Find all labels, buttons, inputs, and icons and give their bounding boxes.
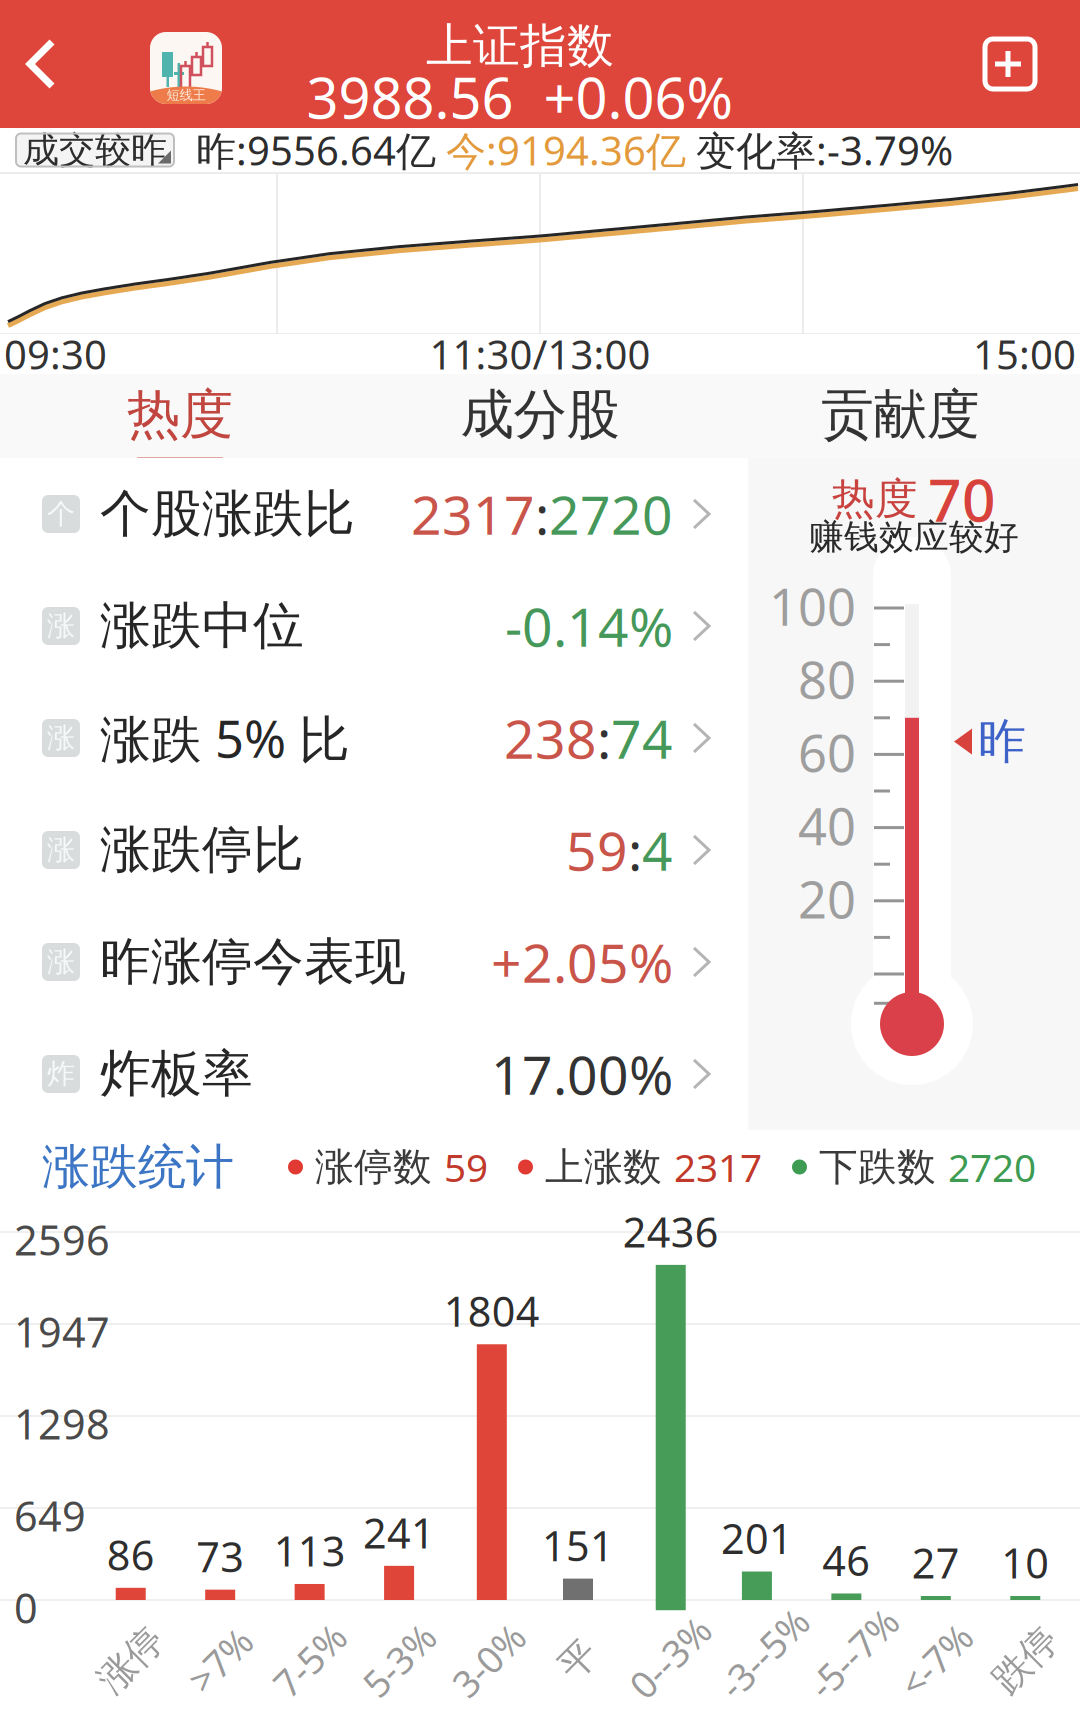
staticText: 上涨数 (545, 1143, 662, 1191)
staticText: 20 (798, 865, 856, 932)
staticText: : (628, 815, 642, 885)
staticText: 涨 (47, 609, 75, 643)
staticText: 涨跌 5% 比 (100, 704, 350, 772)
staticText: 涨 (47, 833, 75, 867)
staticText: 赚钱效应较好 (809, 516, 1019, 558)
staticText: 今:9194.36亿 (446, 123, 686, 176)
staticText: 241 (363, 1505, 435, 1560)
staticText: 17.00% (491, 1039, 673, 1109)
staticText: -5--7% (802, 1635, 911, 1685)
staticText: 1947 (14, 1304, 110, 1359)
staticText: 15:00 (973, 327, 1076, 380)
staticText: 变化率:-3.79% (696, 123, 953, 176)
staticText: 86 (107, 1527, 155, 1582)
staticText: 2436 (623, 1204, 719, 1259)
staticText: 59 (566, 815, 628, 885)
staticText: <-7% (893, 1635, 978, 1685)
staticText: 74 (611, 703, 673, 773)
staticText: 2596 (14, 1212, 110, 1267)
button[interactable]: 成交较昨 (16, 133, 174, 166)
button[interactable]: 炸 (0, 1018, 748, 1130)
staticText: 09:30 (4, 327, 107, 380)
staticText: 60 (798, 719, 856, 786)
staticText: 238 (504, 703, 597, 773)
button[interactable]: 涨 (0, 906, 748, 1018)
staticText: : (597, 703, 611, 773)
staticText: 下跌数 (819, 1143, 936, 1191)
staticText: 2317 (674, 1141, 762, 1193)
staticText: 个股涨跌比 (100, 483, 355, 545)
staticText: 7-5% (267, 1635, 352, 1685)
staticText: 2720 (549, 479, 673, 549)
staticText: 涨跌中位 (100, 595, 304, 657)
staticText: 昨:9556.64亿 (196, 123, 436, 176)
button[interactable]: Back (16, 0, 126, 128)
staticText: 5-3% (357, 1635, 442, 1685)
staticText: 80 (798, 646, 856, 713)
button[interactable]: 涨 (0, 682, 748, 794)
button[interactable]: 贡献度 (720, 374, 1080, 458)
staticText: 涨 (47, 945, 75, 979)
staticText: 贡献度 (820, 382, 979, 447)
button[interactable]: 涨 (0, 570, 748, 682)
button[interactable]: 个 (0, 458, 748, 570)
staticText: 上证指数 (426, 17, 614, 75)
staticText: 2720 (948, 1141, 1036, 1193)
staticText: 涨跌停比 (100, 819, 304, 881)
staticText: 46 (822, 1533, 870, 1587)
staticText: 1298 (14, 1396, 110, 1451)
staticText: 0 (14, 1580, 38, 1635)
staticText: 炸板率 (100, 1043, 253, 1105)
staticText: 个 (47, 497, 75, 531)
button[interactable]: 涨 (0, 794, 748, 906)
staticText: >7% (184, 1635, 257, 1685)
staticText: 涨停 (94, 1637, 168, 1683)
staticText: 热度 (127, 382, 233, 447)
staticText: 113 (274, 1523, 346, 1578)
staticText: 201 (721, 1511, 793, 1565)
staticText: 炸 (47, 1057, 75, 1091)
staticText: 4 (642, 815, 673, 885)
staticText: 100 (769, 572, 856, 640)
staticText: +2.05% (491, 927, 673, 997)
staticText: 成交较昨 (23, 128, 167, 172)
staticText: 0--3% (623, 1635, 720, 1685)
staticText: 3-0% (446, 1635, 531, 1685)
staticText: 40 (798, 792, 856, 859)
staticText: 涨 (47, 721, 75, 755)
staticText: 10 (1001, 1535, 1049, 1590)
staticText: 11:30/13:00 (429, 327, 650, 380)
staticText: 27 (912, 1535, 960, 1590)
staticText: -3--5% (712, 1635, 821, 1685)
staticText: 3988.56 +0.06% (306, 60, 733, 134)
staticText: 成分股 (460, 382, 619, 447)
staticText: 1804 (444, 1283, 540, 1338)
staticText: 昨涨停今表现 (100, 931, 406, 993)
staticText: : (535, 479, 549, 549)
staticText: 2317 (411, 479, 535, 549)
staticText: 涨跌统计 (42, 1137, 234, 1196)
staticText: 平 (559, 1637, 596, 1683)
button[interactable]: 热度 (0, 374, 360, 458)
staticText: 70 (928, 460, 996, 538)
staticText: 59 (444, 1141, 488, 1193)
staticText: 73 (196, 1529, 244, 1584)
staticText: 昨 (978, 712, 1026, 771)
staticText: 热度 (832, 473, 918, 525)
staticText: -0.14% (505, 591, 673, 661)
staticText: 649 (14, 1488, 86, 1543)
staticText: 跌停 (988, 1637, 1062, 1683)
staticText: 短线王 (166, 87, 205, 103)
button[interactable]: 成分股 (360, 374, 720, 458)
button[interactable]: Add (960, 0, 1060, 128)
staticText: 涨停数 (315, 1143, 432, 1191)
staticText: 151 (542, 1518, 614, 1573)
